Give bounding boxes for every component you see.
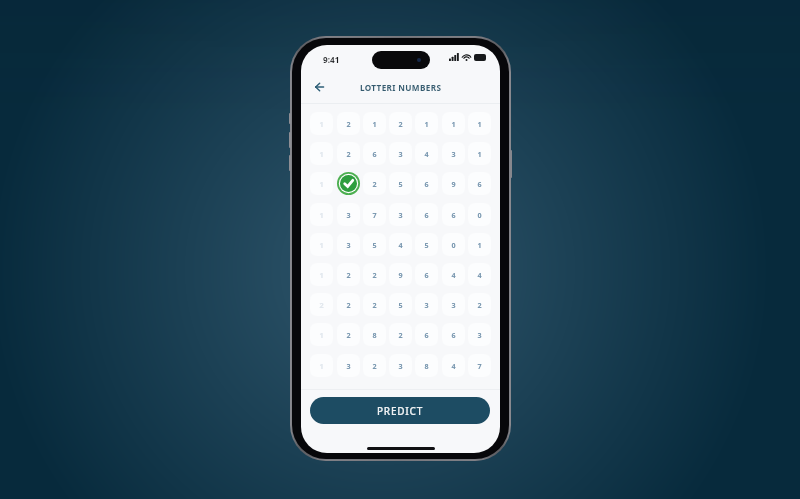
button[interactable]: 3 [389, 354, 412, 377]
button[interactable]: 4 [442, 354, 465, 377]
button[interactable]: 6 [442, 203, 465, 226]
staticText: 9 [451, 179, 456, 189]
button[interactable]: 6 [415, 323, 438, 346]
button[interactable]: 2 [363, 263, 386, 286]
button[interactable]: 3 [389, 142, 412, 165]
button[interactable]: 3 [442, 293, 465, 316]
staticText: 1 [319, 240, 324, 250]
staticText: 9 [398, 270, 403, 280]
staticText: 0 [451, 240, 456, 250]
button[interactable]: 2 [337, 263, 360, 286]
button[interactable]: 1 [310, 233, 333, 256]
staticText: 4 [424, 149, 429, 159]
button[interactable]: 2 [363, 172, 386, 195]
staticText: 2 [372, 270, 377, 280]
staticText: 1 [319, 361, 324, 371]
button[interactable]: 3 [337, 203, 360, 226]
button[interactable]: 2 [363, 293, 386, 316]
button[interactable]: 2 [337, 323, 360, 346]
staticText: 1 [424, 119, 429, 129]
staticText: 2 [346, 270, 351, 280]
staticText: 3 [451, 300, 456, 310]
staticText: 3 [346, 210, 351, 220]
staticText: 1 [319, 330, 324, 340]
button[interactable]: 1 [310, 263, 333, 286]
staticText: 6 [451, 210, 456, 220]
staticText: 7 [477, 361, 482, 371]
button[interactable]: 3 [468, 323, 491, 346]
staticText: 2 [477, 300, 482, 310]
button[interactable]: 4 [468, 263, 491, 286]
staticText: 2 [398, 119, 403, 129]
button[interactable]: 4 [415, 142, 438, 165]
staticText: 2 [398, 330, 403, 340]
staticText: 3 [346, 361, 351, 371]
button[interactable]: 3 [337, 233, 360, 256]
staticText: 6 [451, 330, 456, 340]
staticText: 4 [398, 240, 403, 250]
button[interactable]: 3 [415, 293, 438, 316]
staticText: 9:41 [323, 54, 340, 65]
staticText: 1 [319, 270, 324, 280]
button[interactable]: Selected number [337, 172, 360, 195]
button[interactable]: 1 [310, 112, 333, 135]
button[interactable]: 5 [415, 233, 438, 256]
button[interactable]: 1 [310, 142, 333, 165]
button[interactable]: 6 [468, 172, 491, 195]
staticText: 8 [372, 330, 377, 340]
staticText: 1 [477, 149, 482, 159]
button[interactable]: 5 [389, 172, 412, 195]
button[interactable]: 1 [310, 323, 333, 346]
button[interactable]: 1 [468, 112, 491, 135]
button[interactable]: 1 [468, 233, 491, 256]
staticText: 6 [424, 270, 429, 280]
button[interactable]: 2 [337, 293, 360, 316]
button[interactable]: 1 [310, 203, 333, 226]
button[interactable]: 2 [337, 112, 360, 135]
button[interactable]: 8 [415, 354, 438, 377]
button[interactable]: Back [309, 77, 329, 97]
button[interactable]: 4 [442, 263, 465, 286]
button[interactable]: 1 [363, 112, 386, 135]
button[interactable]: 3 [337, 354, 360, 377]
button[interactable]: 1 [415, 112, 438, 135]
button[interactable]: 7 [363, 203, 386, 226]
button[interactable]: 2 [337, 142, 360, 165]
button[interactable]: 1 [442, 112, 465, 135]
button[interactable]: 2 [389, 323, 412, 346]
button[interactable]: 6 [442, 323, 465, 346]
button[interactable]: 6 [415, 263, 438, 286]
button[interactable]: 9 [389, 263, 412, 286]
staticText: 3 [424, 300, 429, 310]
button[interactable]: 5 [389, 293, 412, 316]
button[interactable]: 3 [389, 203, 412, 226]
staticText: 3 [477, 330, 482, 340]
button[interactable]: 1 [468, 142, 491, 165]
staticText: 3 [398, 361, 403, 371]
button[interactable]: 6 [415, 203, 438, 226]
button[interactable]: 5 [363, 233, 386, 256]
staticText: 8 [424, 361, 429, 371]
button[interactable]: 2 [363, 354, 386, 377]
button[interactable]: PREDICT [310, 397, 490, 424]
button[interactable]: 6 [415, 172, 438, 195]
staticText: 3 [346, 240, 351, 250]
staticText: 4 [477, 270, 482, 280]
staticText: 0 [477, 210, 482, 220]
button[interactable]: 3 [442, 142, 465, 165]
staticText: 1 [319, 210, 324, 220]
button[interactable]: 2 [310, 293, 333, 316]
staticText: 3 [398, 210, 403, 220]
button[interactable]: 1 [310, 172, 333, 195]
button[interactable]: 9 [442, 172, 465, 195]
button[interactable]: 1 [310, 354, 333, 377]
button[interactable]: 6 [363, 142, 386, 165]
staticText: 6 [424, 210, 429, 220]
button[interactable]: 7 [468, 354, 491, 377]
button[interactable]: 0 [442, 233, 465, 256]
button[interactable]: 8 [363, 323, 386, 346]
button[interactable]: 2 [389, 112, 412, 135]
button[interactable]: 4 [389, 233, 412, 256]
button[interactable]: 0 [468, 203, 491, 226]
button[interactable]: 2 [468, 293, 491, 316]
